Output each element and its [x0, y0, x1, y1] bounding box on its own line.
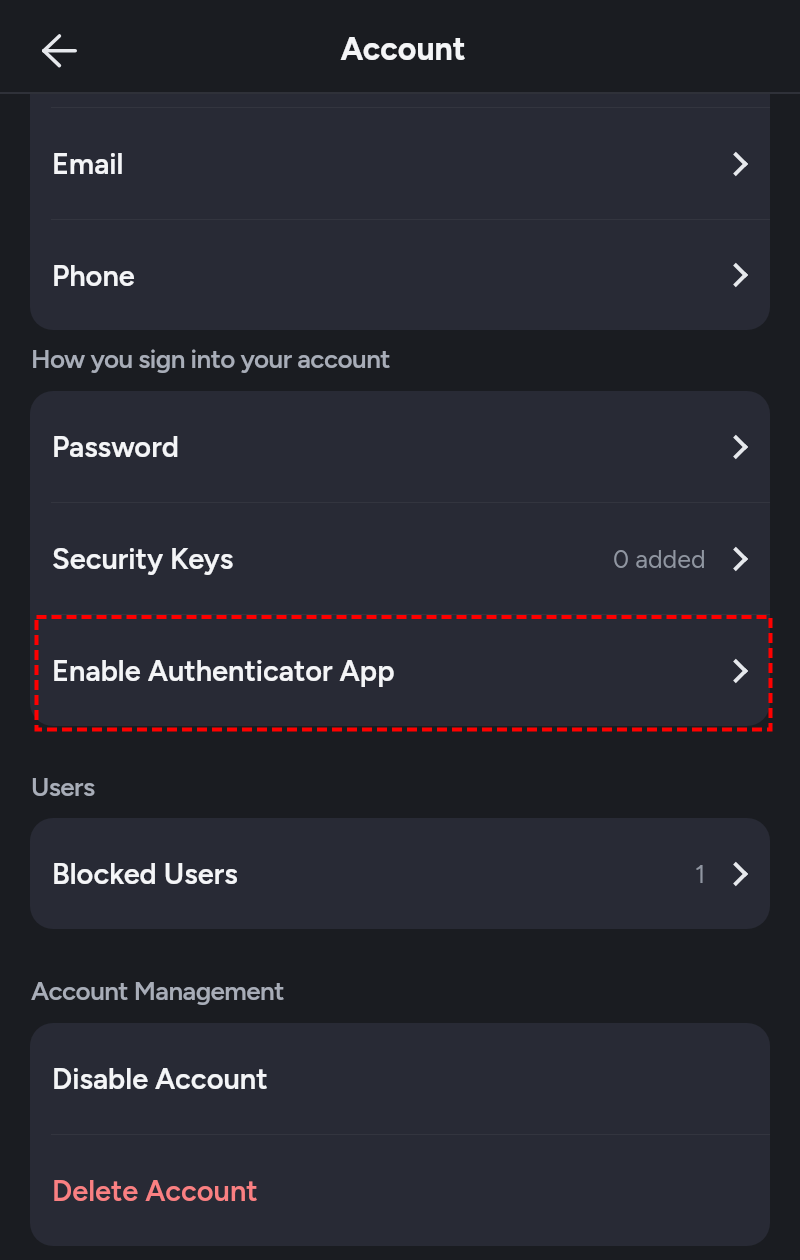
staticText: 1: [695, 859, 706, 889]
staticText: Account: [340, 30, 466, 68]
staticText: Disable Account: [52, 1061, 268, 1096]
button[interactable]: Back: [26, 26, 76, 76]
button[interactable]: Email: [30, 108, 770, 219]
staticText: Password: [52, 429, 179, 464]
button[interactable]: Delete Account: [30, 1135, 770, 1246]
staticText: Blocked Users: [52, 856, 238, 891]
staticText: Delete Account: [52, 1173, 258, 1208]
button[interactable]: Password: [30, 391, 770, 502]
button[interactable]: Blocked Users: [30, 818, 770, 929]
button[interactable]: Enable Authenticator App: [30, 615, 770, 726]
staticText: Account Management: [31, 975, 284, 1006]
staticText: Users: [31, 771, 95, 802]
staticText: Enable Authenticator App: [52, 653, 395, 688]
staticText: How you sign into your account: [31, 343, 390, 374]
staticText: Email: [52, 146, 124, 181]
button[interactable]: Phone: [30, 220, 770, 330]
button[interactable]: Disable Account: [30, 1023, 770, 1134]
staticText: Security Keys: [52, 541, 234, 576]
staticText: Phone: [52, 258, 135, 293]
staticText: 0 added: [613, 544, 706, 574]
button[interactable]: Security Keys: [30, 503, 770, 614]
